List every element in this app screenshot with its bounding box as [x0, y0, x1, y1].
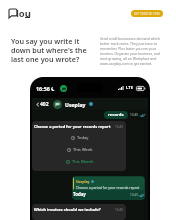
staticText: Today: [73, 191, 130, 197]
staticText: 16:56: [36, 85, 50, 92]
button[interactable]: Useplay: [72, 176, 145, 200]
staticText: lou: [16, 7, 31, 19]
staticText: 13:45: [130, 113, 139, 117]
staticText: Useplay: [76, 179, 90, 184]
staticText: Useplay: [65, 101, 86, 108]
staticText: LTE: [126, 85, 134, 91]
button[interactable]: GET STARTED FREE: [131, 10, 163, 17]
button[interactable]: This Week: [33, 146, 126, 154]
staticText: records: [108, 112, 124, 118]
staticText: Choose a period for your records report: [76, 185, 140, 190]
staticText: This Week: [73, 147, 93, 153]
staticText: Choose a period for your records report: [34, 124, 115, 129]
staticText: You say you write it down but where's th…: [11, 36, 87, 64]
button[interactable]: This Month: [33, 158, 126, 166]
staticText: Send small businesses demand which bette…: [100, 36, 168, 66]
staticText: 402: [40, 101, 49, 108]
staticText: 13:45: [115, 125, 123, 129]
staticText: 13:45: [115, 208, 123, 212]
staticText: 13:45: [130, 193, 138, 197]
staticText: GET STARTED FREE: [134, 12, 160, 16]
staticText: Which invoices should we include?: [34, 207, 115, 212]
button[interactable]: lou: [8, 7, 32, 19]
staticText: This Month: [72, 159, 94, 165]
button[interactable]: records: [108, 111, 124, 119]
button[interactable]: Today: [33, 134, 126, 142]
button[interactable]: Back: [35, 102, 40, 107]
staticText: Today: [77, 135, 89, 141]
